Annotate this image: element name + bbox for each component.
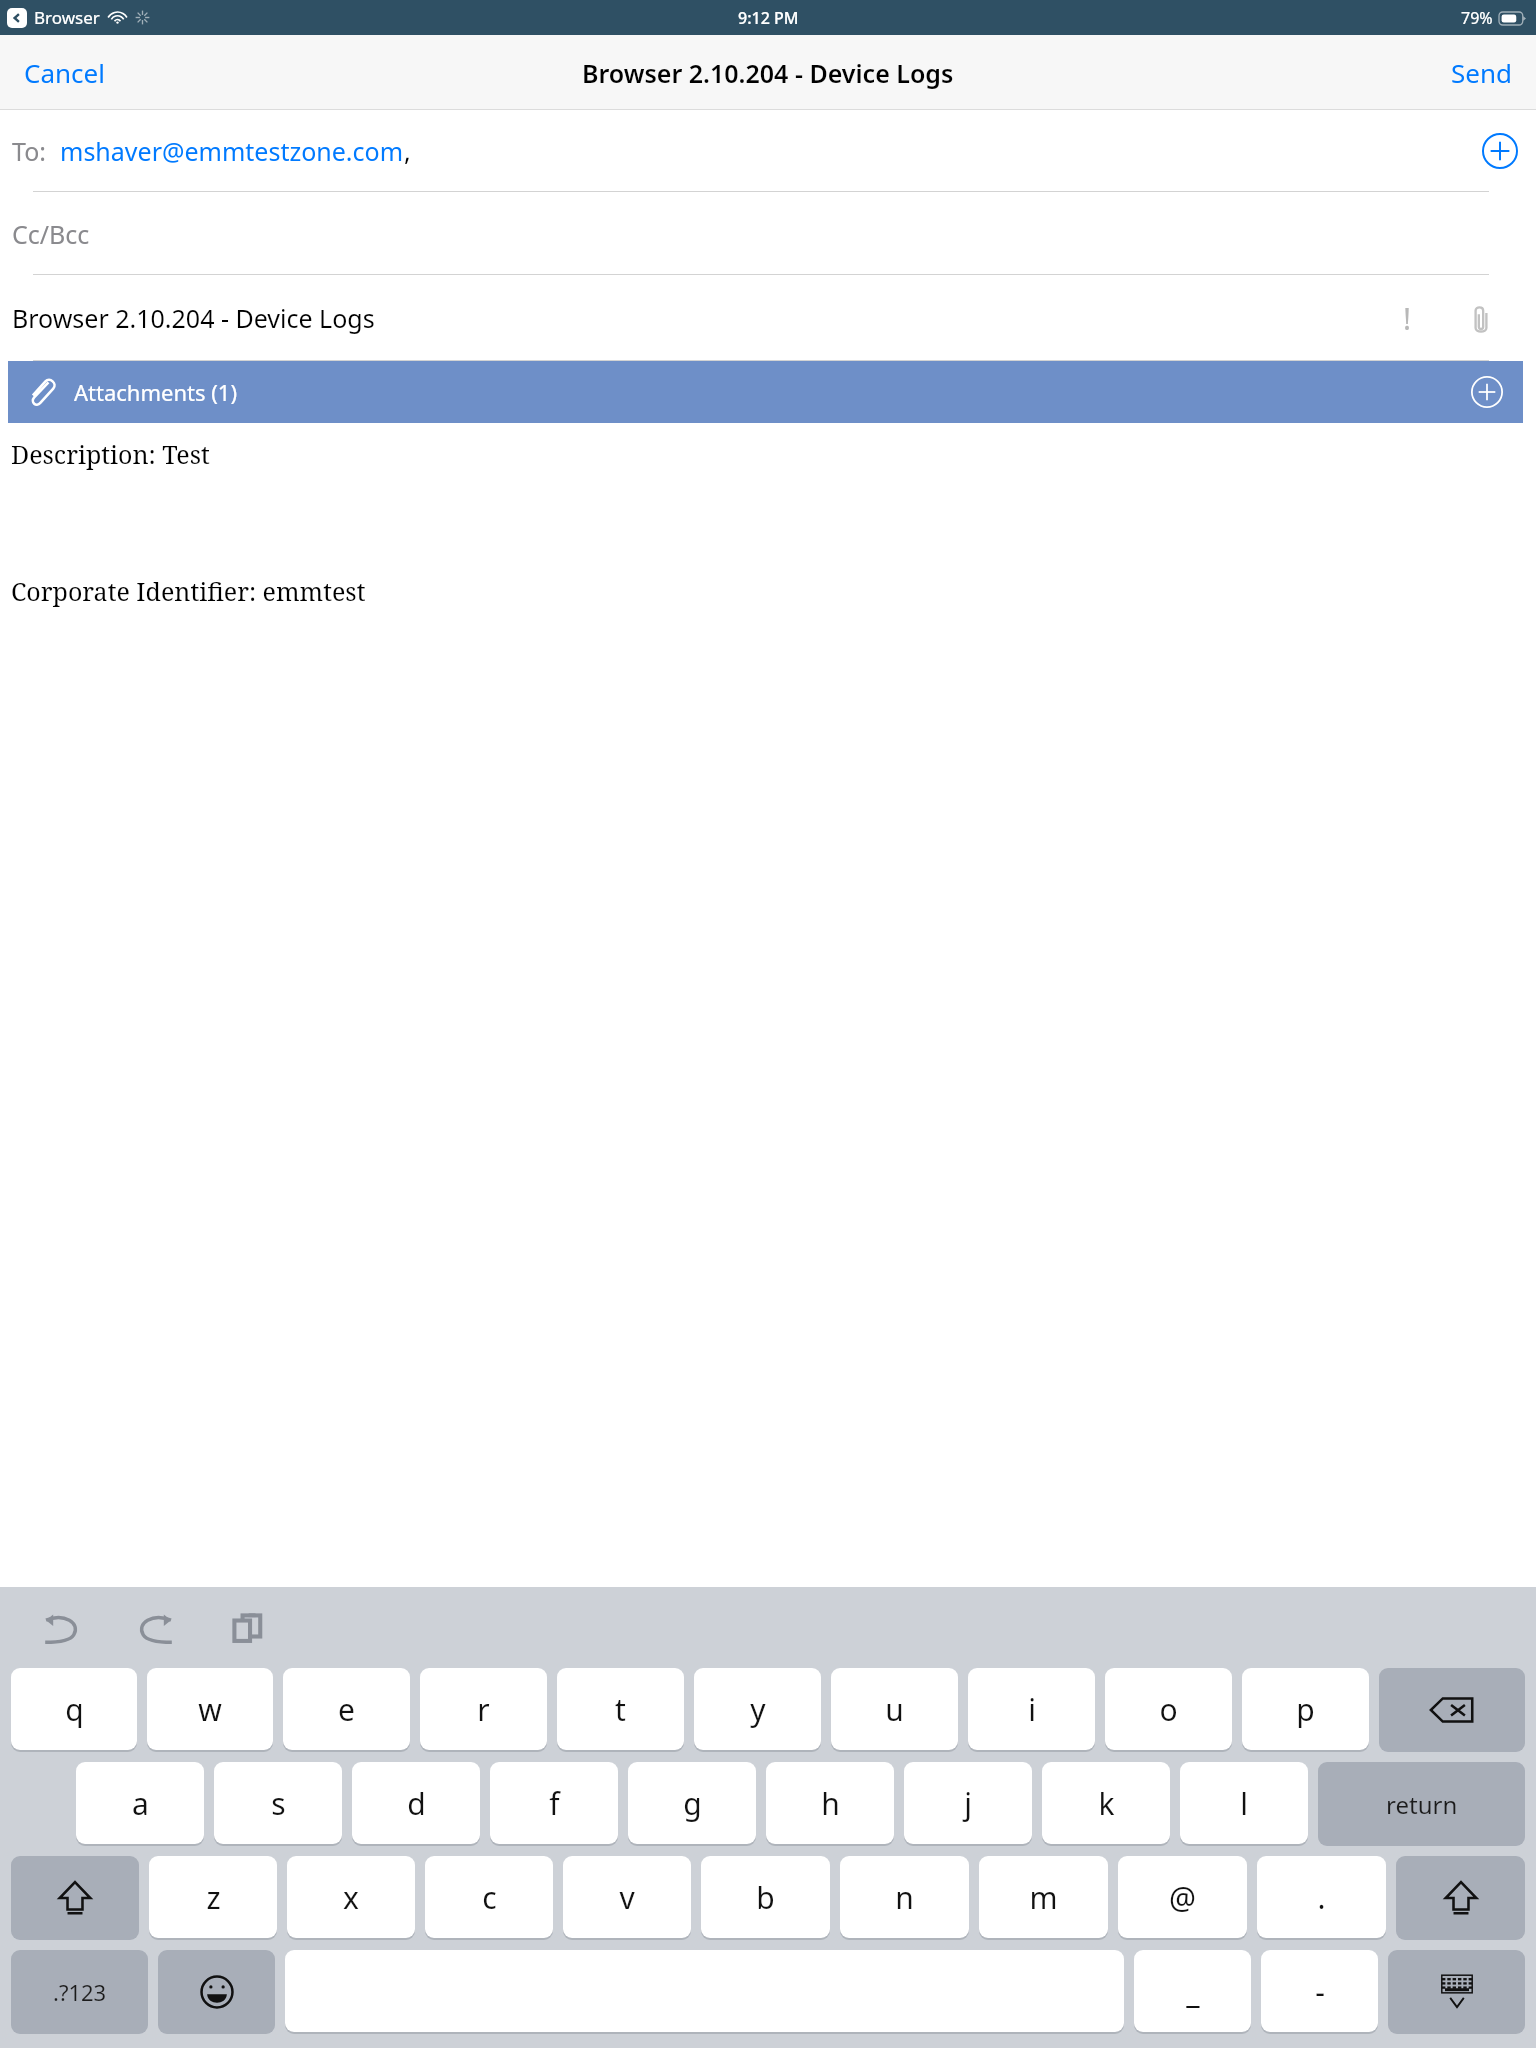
button[interactable]: Browser 2.10.204 - Device Logs xyxy=(0,275,1536,361)
button[interactable]: w xyxy=(147,1668,273,1752)
button[interactable]: v xyxy=(563,1856,691,1940)
staticText: m xyxy=(1029,1877,1058,1918)
button[interactable]: u xyxy=(831,1668,958,1752)
staticText: w xyxy=(198,1689,222,1730)
button[interactable]: m xyxy=(979,1856,1108,1940)
button[interactable]: @ xyxy=(1118,1856,1247,1940)
staticText: Send xyxy=(1451,55,1512,90)
staticText: a xyxy=(132,1783,149,1824)
staticText: z xyxy=(206,1877,221,1918)
button[interactable]: Hide keyboard xyxy=(1388,1950,1525,2034)
staticText: k xyxy=(1098,1783,1115,1824)
button[interactable]: q xyxy=(11,1668,137,1752)
staticText: c xyxy=(482,1877,497,1918)
button[interactable] xyxy=(1379,1668,1525,1752)
button[interactable]: Redo xyxy=(127,1600,183,1656)
staticText: j xyxy=(964,1783,972,1824)
staticText: d xyxy=(407,1783,426,1824)
button[interactable]: e xyxy=(283,1668,410,1752)
button[interactable]: Add recipient xyxy=(1478,129,1522,173)
button[interactable]: n xyxy=(840,1856,969,1940)
staticText: x xyxy=(343,1877,359,1918)
button[interactable]: d xyxy=(352,1762,480,1846)
button[interactable]: g xyxy=(628,1762,756,1846)
button[interactable]: r xyxy=(420,1668,547,1752)
staticText: Attachments (1) xyxy=(74,377,237,407)
button[interactable]: Space xyxy=(285,1950,1124,2034)
staticText: , xyxy=(404,134,411,168)
button[interactable]: Cc/Bcc xyxy=(0,192,1536,275)
staticText: b xyxy=(756,1877,775,1918)
button[interactable]: s xyxy=(214,1762,342,1846)
staticText: 9:12 PM xyxy=(738,7,799,29)
button[interactable]: To: xyxy=(0,110,1536,192)
staticText: i xyxy=(1028,1689,1036,1730)
staticText: v xyxy=(619,1877,635,1918)
staticText: return xyxy=(1386,1788,1458,1821)
staticText: Browser 2.10.204 - Device Logs xyxy=(582,56,954,90)
staticText: f xyxy=(549,1783,560,1824)
button[interactable]: j xyxy=(904,1762,1032,1846)
staticText: p xyxy=(1296,1689,1315,1730)
staticText: ! xyxy=(1403,298,1412,339)
button[interactable]: Cancel xyxy=(0,43,129,102)
button[interactable]: l xyxy=(1180,1762,1308,1846)
staticText: 79% xyxy=(1461,7,1493,29)
button[interactable]: o xyxy=(1105,1668,1232,1752)
button[interactable]: c xyxy=(425,1856,553,1940)
button[interactable]: z xyxy=(149,1856,277,1940)
staticText: _ xyxy=(1186,1971,1200,2012)
staticText: - xyxy=(1315,1971,1325,2012)
button[interactable]: Attachments (1) xyxy=(8,361,1523,423)
staticText: Browser 2.10.204 - Device Logs xyxy=(12,301,375,335)
staticText: Browser xyxy=(34,6,100,29)
staticText: To: xyxy=(12,134,46,168)
button[interactable]: b xyxy=(701,1856,830,1940)
button[interactable]: Add attachment xyxy=(1467,372,1507,412)
staticText: g xyxy=(683,1783,702,1824)
staticText: u xyxy=(885,1689,904,1730)
staticText: n xyxy=(895,1877,914,1918)
button[interactable]: y xyxy=(694,1668,821,1752)
button[interactable]: p xyxy=(1242,1668,1369,1752)
staticText: .?123 xyxy=(53,1977,107,2007)
button[interactable]: . xyxy=(1257,1856,1386,1940)
staticText: e xyxy=(338,1689,355,1730)
button[interactable]: k xyxy=(1042,1762,1170,1846)
button[interactable]: return xyxy=(1318,1762,1525,1846)
staticText: @ xyxy=(1169,1877,1196,1918)
button[interactable]: _ xyxy=(1134,1950,1251,2034)
staticText: l xyxy=(1240,1783,1248,1824)
button[interactable]: Paste xyxy=(220,1600,276,1656)
staticText: o xyxy=(1159,1689,1178,1730)
button[interactable]: a xyxy=(76,1762,204,1846)
button[interactable]: .?123 xyxy=(11,1950,148,2034)
staticText: s xyxy=(271,1783,286,1824)
staticText: Corporate Identifier: emmtest xyxy=(11,574,366,608)
button[interactable] xyxy=(11,1856,139,1940)
button[interactable]: f xyxy=(490,1762,618,1846)
staticText: t xyxy=(615,1689,626,1730)
staticText: q xyxy=(65,1689,84,1730)
button[interactable] xyxy=(1396,1856,1525,1940)
staticText: y xyxy=(750,1689,766,1730)
staticText: . xyxy=(1317,1877,1326,1918)
button[interactable]: Emoji xyxy=(158,1950,275,2034)
button[interactable]: x xyxy=(287,1856,415,1940)
staticText: Description: Test xyxy=(11,437,210,471)
button[interactable]: t xyxy=(557,1668,684,1752)
button[interactable]: - xyxy=(1261,1950,1378,2034)
staticText: Cc/Bcc xyxy=(12,217,90,251)
button[interactable]: Send xyxy=(1427,43,1536,102)
staticText: h xyxy=(821,1783,840,1824)
button[interactable]: i xyxy=(968,1668,1095,1752)
staticText: mshaver@emmtestzone.com xyxy=(60,134,404,168)
other: Attach file xyxy=(1466,304,1496,334)
button[interactable]: h xyxy=(766,1762,894,1846)
button[interactable]: Undo xyxy=(34,1600,90,1656)
staticText: r xyxy=(477,1689,490,1730)
staticText: Cancel xyxy=(24,55,105,90)
